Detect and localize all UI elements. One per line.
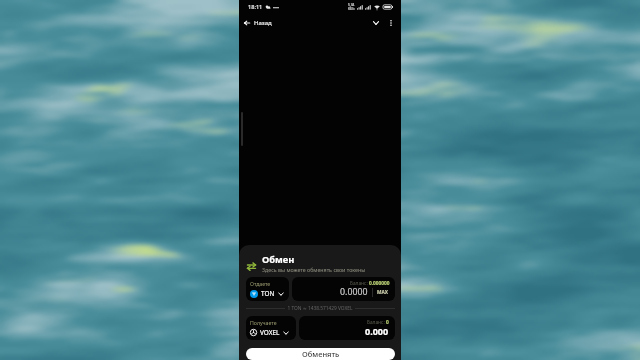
button[interactable]: Back xyxy=(242,16,274,30)
staticText: Здесь вы можете обменять свои токены xyxy=(262,266,366,273)
staticText: Отдаете xyxy=(250,280,271,287)
other: Back xyxy=(244,20,250,26)
staticText: MAX xyxy=(377,289,389,296)
staticText: 5,34 xyxy=(348,3,355,7)
staticText: 0 xyxy=(386,319,389,326)
button[interactable]: Отдаете xyxy=(246,277,289,301)
staticText: Обмен xyxy=(262,253,295,266)
button[interactable]: Expand xyxy=(369,16,383,30)
staticText: КБ/с xyxy=(348,7,355,11)
staticText: 0.0000 xyxy=(340,286,368,298)
staticText: Получаете xyxy=(250,319,277,326)
staticText: TON xyxy=(261,289,275,298)
staticText: Баланс: xyxy=(350,280,369,287)
staticText: Назад xyxy=(254,19,272,27)
button[interactable]: Баланс: xyxy=(299,316,395,340)
staticText: 1 TON ≈ 1438.571429 VOXEL xyxy=(285,305,355,312)
button[interactable]: Получаете xyxy=(246,316,296,340)
button[interactable]: MAX xyxy=(376,287,390,298)
staticText: 0.000000 xyxy=(369,280,390,287)
button[interactable]: More options xyxy=(384,16,398,30)
staticText: Обменять xyxy=(302,349,340,359)
button[interactable]: Обменять xyxy=(246,348,395,360)
staticText: Баланс: xyxy=(367,319,386,326)
staticText: VOXEL xyxy=(260,328,280,337)
button[interactable]: Баланс: xyxy=(292,277,395,301)
staticText: 18:11 xyxy=(248,3,263,11)
staticText: 0.000 xyxy=(365,325,389,337)
